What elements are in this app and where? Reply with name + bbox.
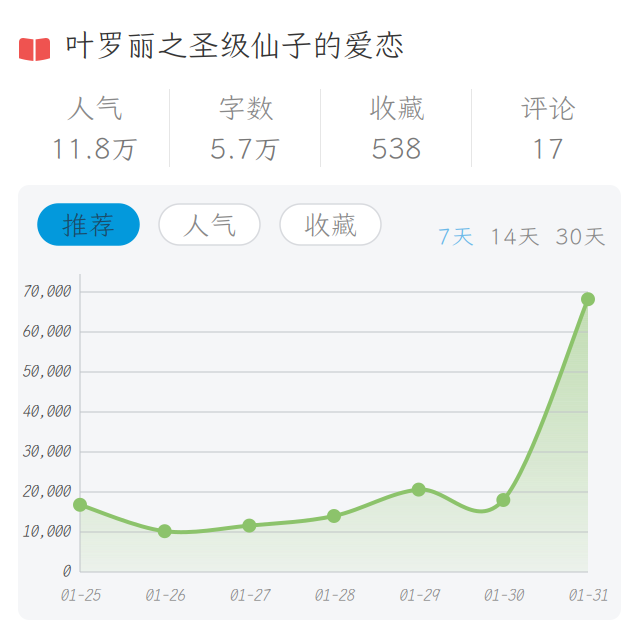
- staticText: 01-25: [60, 586, 100, 605]
- button[interactable]: 收藏: [280, 204, 381, 245]
- staticText: 538: [371, 130, 422, 167]
- button[interactable]: 30天: [555, 221, 606, 251]
- staticText: 01-30: [483, 586, 523, 605]
- staticText: 推荐: [61, 207, 115, 242]
- staticText: 14天: [489, 221, 540, 251]
- staticText: 5.7万: [209, 130, 281, 167]
- staticText: 叶罗丽之圣级仙子的爱恋: [64, 24, 405, 64]
- staticText: 人气: [66, 89, 122, 126]
- staticText: 17: [530, 130, 564, 167]
- staticText: 50,000: [22, 362, 70, 381]
- staticText: 评论: [519, 89, 575, 126]
- staticText: 70,000: [22, 282, 70, 301]
- staticText: 收藏: [303, 207, 357, 242]
- staticText: 01-29: [399, 586, 439, 605]
- staticText: 字数: [217, 89, 273, 126]
- staticText: 11.8万: [50, 130, 139, 167]
- staticText: 30天: [555, 221, 606, 251]
- staticText: 40,000: [22, 402, 70, 421]
- button[interactable]: 7天: [437, 221, 474, 251]
- staticText: 01-26: [145, 586, 185, 605]
- staticText: 收藏: [368, 89, 424, 126]
- staticText: 人气: [182, 207, 236, 242]
- staticText: 01-28: [314, 586, 354, 605]
- staticText: 20,000: [22, 482, 70, 501]
- button[interactable]: 14天: [489, 221, 540, 251]
- button[interactable]: 推荐: [38, 204, 139, 245]
- staticText: 0: [62, 562, 70, 581]
- staticText: 10,000: [22, 522, 70, 541]
- button[interactable]: 人气: [159, 204, 260, 245]
- staticText: 60,000: [22, 322, 70, 341]
- staticText: 30,000: [22, 442, 70, 461]
- staticText: 01-27: [229, 586, 269, 605]
- staticText: 01-31: [568, 586, 608, 605]
- staticText: 7天: [437, 221, 474, 251]
